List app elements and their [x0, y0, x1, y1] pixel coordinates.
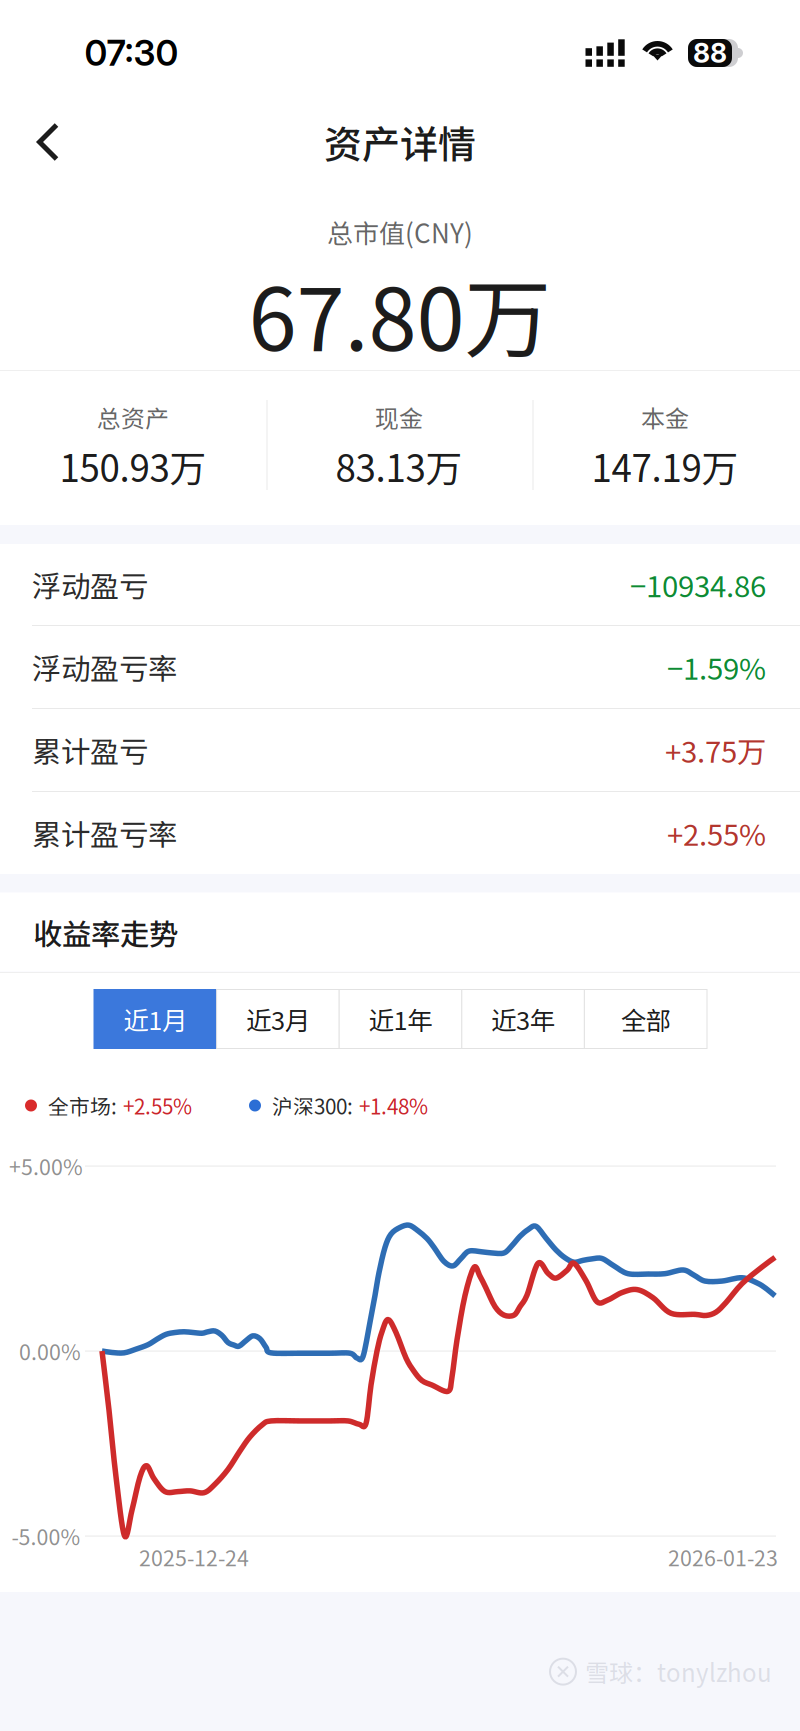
staticText: +1.48% [359, 1090, 428, 1120]
staticText: 雪球：tonylzhou [585, 1654, 772, 1689]
staticText: 67.80万 [248, 250, 551, 376]
staticText: 83.13万 [335, 439, 462, 493]
staticText: 沪深300: [272, 1090, 353, 1120]
staticText: −1.59% [667, 646, 766, 688]
button[interactable]: 浮动盈亏率 [0, 626, 800, 709]
button[interactable]: 浮动盈亏 [0, 544, 800, 626]
staticText: 浮动盈亏率 [32, 646, 177, 688]
button[interactable]: 近1年 [339, 989, 462, 1048]
button[interactable]: 近3年 [462, 989, 584, 1048]
staticText: 近1年 [368, 1001, 432, 1037]
button[interactable]: 全部 [584, 989, 707, 1048]
button[interactable]: 近1月 [94, 989, 217, 1048]
staticText: +5.00% [9, 1151, 83, 1181]
staticText: 近3年 [491, 1001, 555, 1037]
staticText: 本金 [641, 400, 689, 434]
staticText: 07:30 [84, 32, 178, 74]
staticText: 全部 [621, 1001, 671, 1037]
staticText: +2.55% [667, 812, 766, 854]
staticText: 2025-12-24 [139, 1542, 249, 1572]
staticText: -5.00% [11, 1521, 80, 1551]
staticText: 147.19万 [591, 439, 738, 493]
staticText: −10934.86 [630, 563, 766, 606]
button[interactable]: 累计盈亏 [0, 709, 800, 792]
staticText: 总市值(CNY) [327, 213, 473, 251]
staticText: 总资产 [97, 400, 169, 434]
staticText: 累计盈亏率 [32, 812, 177, 854]
staticText: 收益率走势 [33, 911, 178, 954]
staticText: 累计盈亏 [32, 729, 148, 771]
staticText: 近1月 [123, 1001, 187, 1037]
button[interactable]: 近3月 [217, 989, 339, 1048]
staticText: 0.00% [19, 1336, 81, 1366]
staticText: 150.93万 [59, 439, 206, 493]
button[interactable]: 返回 [8, 102, 88, 182]
button[interactable]: 累计盈亏率 [0, 792, 800, 874]
staticText: +2.55% [123, 1090, 192, 1120]
staticText: 浮动盈亏 [32, 563, 148, 606]
staticText: 资产详情 [324, 114, 476, 169]
staticText: 2026-01-23 [668, 1542, 778, 1572]
staticText: 全市场: [48, 1090, 117, 1120]
staticText: 现金 [375, 400, 423, 434]
staticText: 近3月 [246, 1001, 310, 1037]
staticText: +3.75万 [665, 729, 766, 771]
staticText: 88 [693, 37, 727, 69]
